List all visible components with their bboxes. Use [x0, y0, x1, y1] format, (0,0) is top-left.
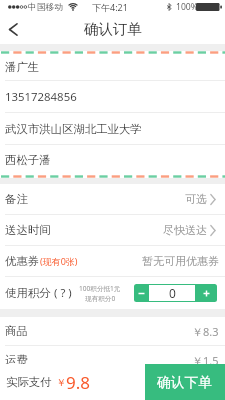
staticText: 优惠券 [5, 254, 40, 268]
staticText: 下午4:21 [92, 1, 128, 13]
staticText: 暂无可用优惠券 [142, 254, 219, 268]
staticText: 可选 [185, 192, 207, 206]
button[interactable]: Decrease [134, 284, 149, 302]
button[interactable]: 潘广生 [0, 54, 225, 80]
staticText: 运费 [5, 353, 28, 367]
button[interactable]: 商品 [0, 317, 225, 345]
button[interactable]: 送达时间 [0, 215, 225, 245]
button[interactable]: Help [54, 284, 72, 302]
staticText: 确认下单 [157, 374, 213, 391]
button[interactable]: 运费 [0, 346, 225, 374]
button[interactable]: Increase [195, 284, 217, 302]
staticText: 0 [169, 285, 176, 301]
staticText: 尽快送达 [163, 223, 207, 237]
staticText: ￥8.3 [192, 324, 219, 339]
button[interactable]: 备注 [0, 184, 225, 214]
staticText: 实际支付 [6, 375, 52, 389]
staticText: 武汉市洪山区湖北工业大学 [5, 122, 142, 136]
staticText: 备注 [5, 192, 28, 206]
button[interactable]: 优惠券 [0, 246, 225, 276]
staticText: (现有0张) [40, 255, 78, 267]
button[interactable]: 西松子潘 [0, 145, 225, 175]
staticText: 确认订单 [84, 20, 142, 38]
staticText: 100积分抵1元 [79, 284, 121, 293]
staticText: 西松子潘 [5, 153, 51, 167]
button[interactable]: 13517284856 [0, 81, 225, 112]
staticText: 9.8 [66, 371, 91, 394]
staticText: 中国移动 [28, 2, 64, 13]
button[interactable]: 确认下单 [145, 364, 225, 400]
button[interactable]: 武汉市洪山区湖北工业大学 [0, 113, 225, 144]
staticText: 送达时间 [5, 223, 51, 237]
staticText: 商品 [5, 324, 28, 338]
staticText: 13517284856 [5, 89, 77, 105]
staticText: 使用积分 [5, 286, 51, 300]
staticText: 现有积分0 [85, 294, 116, 303]
staticText: ( ? ) [54, 285, 72, 301]
button[interactable]: Back [0, 14, 30, 44]
staticText: 100% [176, 1, 198, 13]
staticText: ￥ [56, 376, 66, 389]
staticText: 潘广生 [5, 60, 40, 74]
staticText: ￥1.5 [192, 353, 219, 368]
